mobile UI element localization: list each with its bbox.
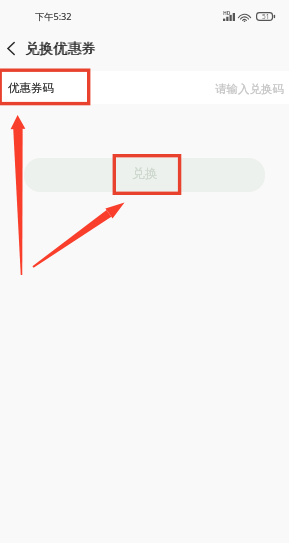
staticText: 兑换 — [132, 165, 158, 181]
staticText: 优惠券码 — [8, 81, 54, 95]
button[interactable]: Back — [0, 38, 21, 59]
staticText: 优惠券码 — [8, 81, 54, 95]
staticText: 51 — [262, 12, 270, 21]
staticText: 下午5:32 — [35, 10, 72, 23]
button[interactable]: 优惠券码 — [0, 71, 289, 104]
staticText: 兑换优惠券 — [26, 40, 96, 58]
staticText: HD — [223, 10, 231, 17]
staticText: 兑换优惠券 — [25, 40, 95, 58]
staticText: 请输入兑换码 — [215, 82, 284, 96]
staticText: 下午5:32 — [35, 10, 72, 23]
button[interactable]: 兑换 — [24, 158, 265, 192]
